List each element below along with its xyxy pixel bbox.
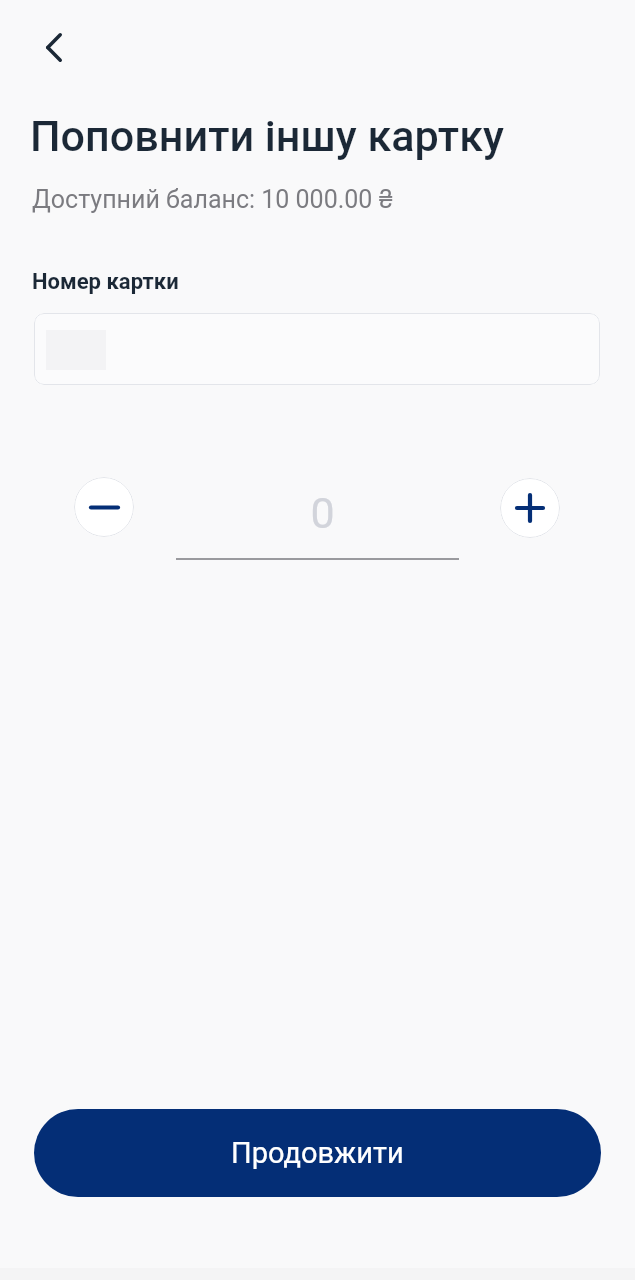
button[interactable]: Продовжити bbox=[34, 1109, 601, 1197]
staticText: Номер картки bbox=[32, 269, 179, 295]
button[interactable]: Increase bbox=[500, 478, 560, 538]
button[interactable]: Card number input bbox=[34, 313, 600, 385]
staticText: Продовжити bbox=[231, 1136, 404, 1170]
button[interactable]: Decrease bbox=[74, 477, 134, 537]
staticText: 0 bbox=[310, 488, 335, 538]
button[interactable]: Back bbox=[22, 15, 86, 79]
staticText: Поповнити іншу картку bbox=[30, 111, 504, 161]
staticText: Доступний баланс: 10 000.00 ₴ bbox=[32, 185, 394, 214]
